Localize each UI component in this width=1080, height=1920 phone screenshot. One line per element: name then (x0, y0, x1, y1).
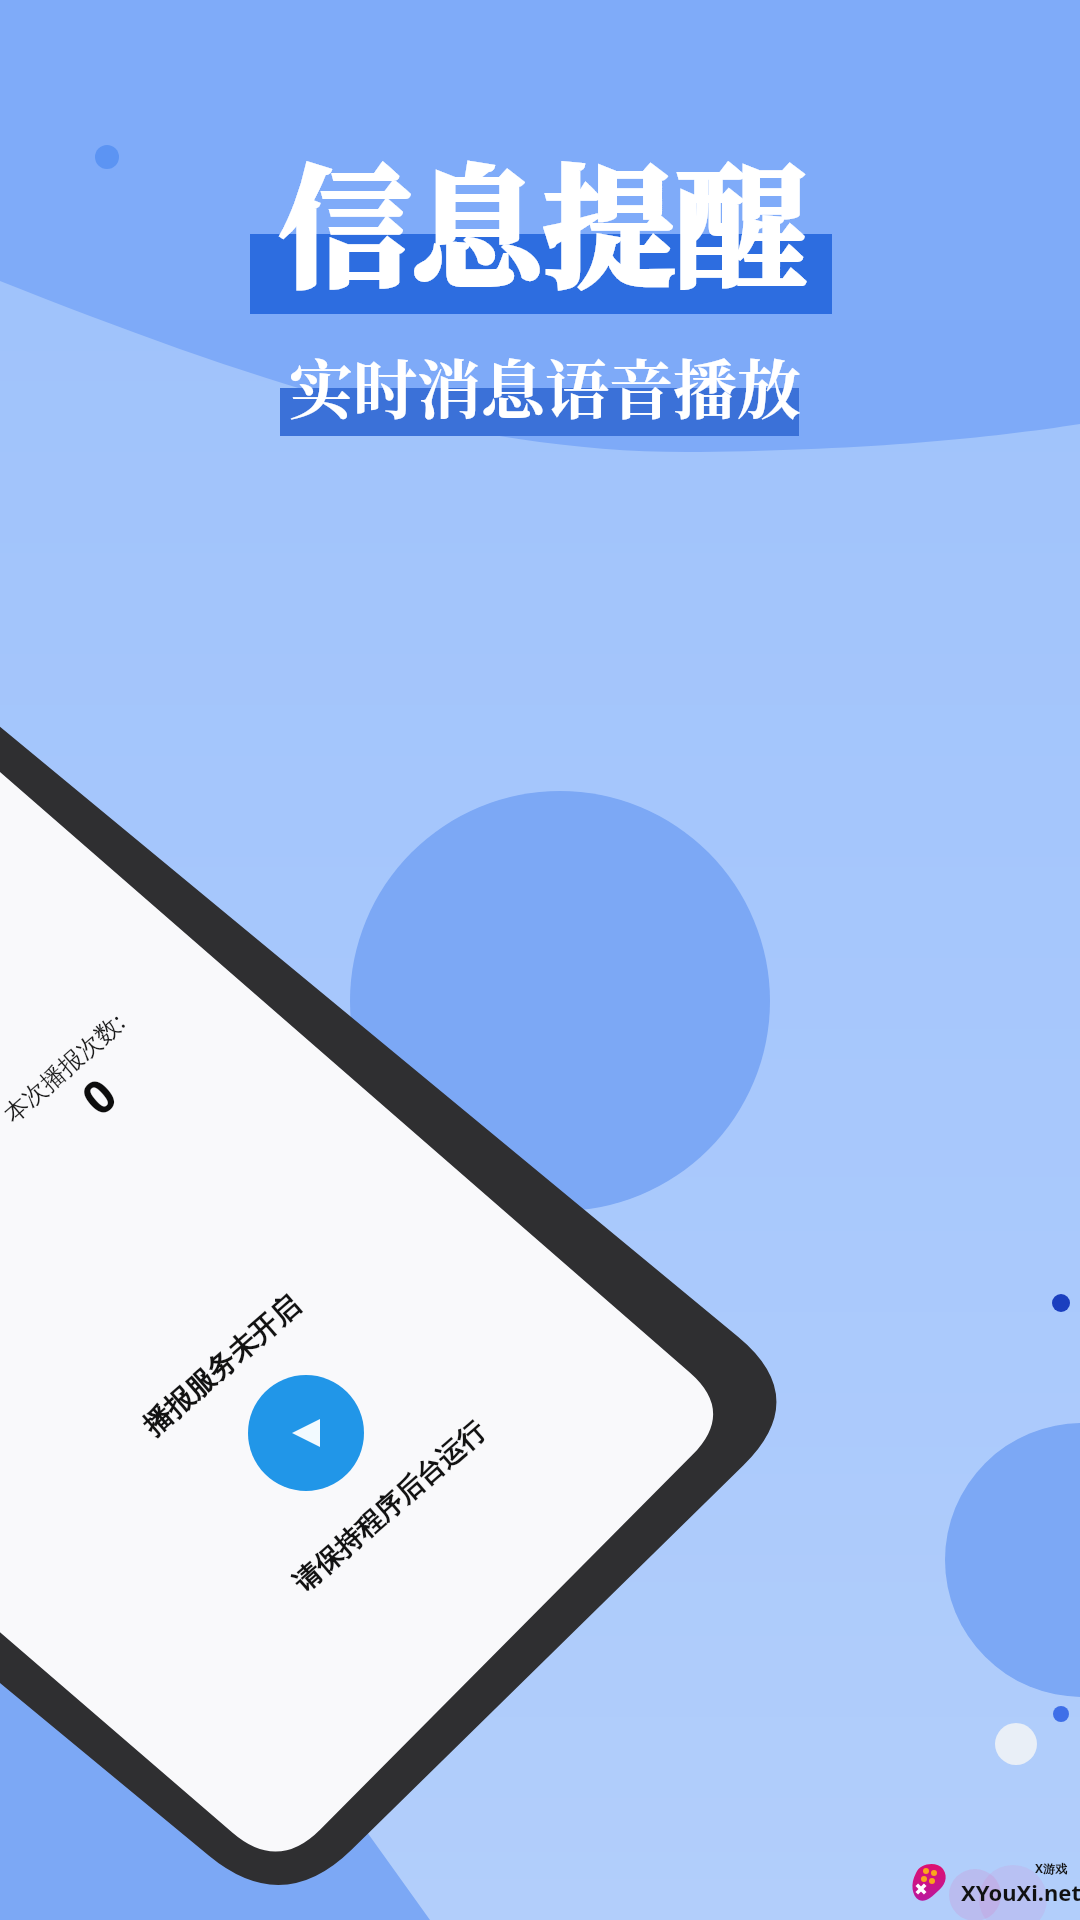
staticText: 播报服务未开启 (136, 1288, 307, 1443)
button[interactable]: Start broadcast (248, 1375, 364, 1491)
staticText: XYouXi.net (961, 1877, 1080, 1907)
staticText: 信息提醒 (279, 124, 807, 314)
staticText: 本次播报次数: (0, 1005, 131, 1129)
staticText: 实时消息语音播放 (289, 339, 801, 431)
staticText: 0 (68, 1063, 130, 1129)
staticText: 请保持程序后台运行 (286, 1414, 492, 1599)
staticText: X游戏 (1035, 1860, 1068, 1876)
